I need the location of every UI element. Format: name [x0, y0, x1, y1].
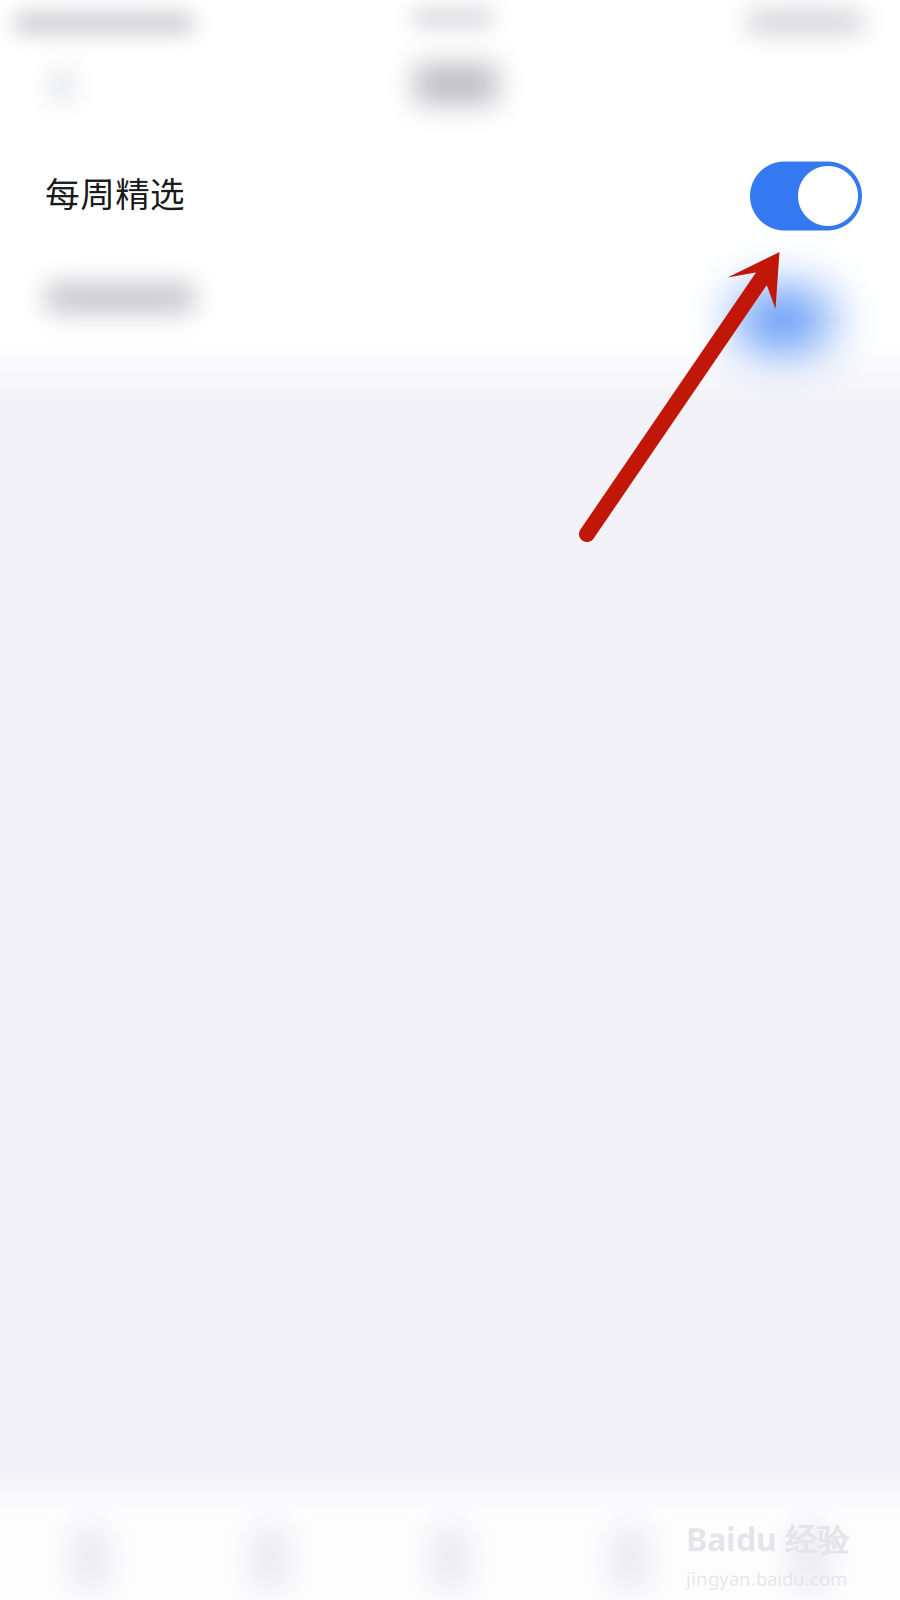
button[interactable]: Tab: [540, 1516, 720, 1600]
button[interactable]: Tab: [180, 1516, 360, 1600]
button[interactable]: Tab: [0, 1516, 180, 1600]
staticText: jingyan.baidu.com: [686, 1566, 847, 1591]
button[interactable]: Tab: [720, 1516, 900, 1600]
button[interactable]: [0, 248, 900, 352]
button[interactable]: Back: [14, 48, 110, 124]
button[interactable]: Tab: [360, 1516, 540, 1600]
button[interactable]: 每周精选: [0, 142, 900, 248]
staticText: Baidu 经验: [686, 1517, 849, 1560]
staticText: 每周精选: [45, 167, 185, 217]
